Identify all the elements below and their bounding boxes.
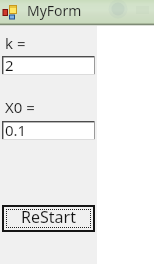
staticText: ReStart (21, 206, 76, 228)
staticText: 2 (5, 55, 14, 74)
staticText: 0.1 (5, 120, 27, 139)
button[interactable]: 2 (2, 56, 95, 75)
staticText: X0 = (5, 97, 35, 117)
button[interactable]: Form icon (0, 0, 154, 26)
other: Form icon (3, 4, 19, 20)
button[interactable]: ReStart (2, 205, 95, 232)
button[interactable]: 0.1 (2, 121, 95, 140)
staticText: MyForm (27, 1, 82, 20)
staticText: k = (5, 33, 26, 53)
